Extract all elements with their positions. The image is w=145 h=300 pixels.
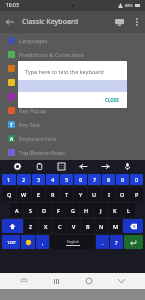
button[interactable]: W [17,187,31,201]
button[interactable]: 123? [2,235,20,249]
staticText: 0 [135,176,139,183]
button[interactable]: I [102,187,115,201]
staticText: Type here to test the keyboard [25,68,104,75]
button[interactable]: Keyboard preview [109,12,129,32]
button[interactable]: Clipboard [33,160,46,173]
staticText: Key Popup [19,107,47,114]
button[interactable]: 5 [60,174,73,185]
staticText: 123? [7,240,16,245]
staticText: F [57,207,60,214]
button[interactable]: Theme [0,75,145,89]
button[interactable]: Back [0,12,20,32]
button[interactable]: Keyboard Layout [0,89,145,103]
button[interactable]: Hide keyboard [16,273,32,289]
button[interactable]: J [94,203,107,217]
button[interactable]: 2 [17,174,31,185]
button[interactable]: . [96,235,109,249]
button[interactable]: K [108,203,121,217]
button[interactable]: Top/Bottom Rows [0,145,145,159]
staticText: P [135,191,139,198]
staticText: U [92,191,97,198]
button[interactable]: 8 [102,174,115,185]
button[interactable]: 3 [32,174,45,185]
staticText: O [120,191,125,198]
button[interactable]: Recents [48,273,64,289]
staticText: S [29,207,33,214]
button[interactable]: Z [24,219,38,233]
button[interactable]: P [130,187,143,201]
button[interactable]: Home [81,273,97,289]
button[interactable]: E [32,187,45,201]
staticText: K [113,207,117,214]
staticText: M [113,223,119,230]
button[interactable]: More options [129,14,145,30]
button[interactable]: Space [50,235,95,249]
staticText: X [44,223,48,230]
button[interactable]: Move right [99,160,112,173]
staticText: E [37,191,41,198]
staticText: 4 [51,176,55,183]
button[interactable]: Settings [11,160,24,173]
staticText: Q [7,191,12,198]
staticText: H [84,207,89,214]
button[interactable]: 9 [116,174,129,185]
staticText: Keyboard Font [19,135,57,142]
staticText: . [102,239,104,246]
staticText: R [51,191,55,198]
button[interactable]: T [60,187,73,201]
button[interactable]: 0 [130,174,143,185]
button[interactable]: Q [2,187,16,201]
button[interactable]: O [116,187,129,201]
button[interactable]: CLOSE [103,95,121,105]
button[interactable]: X [39,219,52,233]
staticText: English [67,239,79,244]
button[interactable]: Languages [0,33,145,47]
staticText: B [86,223,90,230]
button[interactable]: Emoji [21,235,35,249]
button[interactable]: N [95,219,108,233]
button[interactable]: C [53,219,66,233]
button[interactable]: H [80,203,93,217]
button[interactable]: 7 [88,174,101,185]
staticText: T [65,191,69,198]
staticText: 10:03 [6,2,19,9]
button[interactable]: Gestures [0,61,145,75]
button[interactable]: Key Popup [0,103,145,117]
button[interactable]: S [24,203,37,217]
button[interactable]: R [46,187,59,201]
button[interactable]: Enter [124,235,143,249]
button[interactable]: 6 [74,174,87,185]
staticText: N [99,223,104,230]
button[interactable]: Back [113,273,129,289]
staticText: Key Size [19,121,40,128]
button[interactable]: ? [110,235,123,249]
staticText: Y [79,191,83,198]
button[interactable]: Keypad [55,160,68,173]
button[interactable]: G [66,203,79,217]
button[interactable]: A [10,203,23,217]
button[interactable]: , [36,235,49,249]
button[interactable]: M [109,219,122,233]
button[interactable]: Move left [77,160,90,173]
button[interactable]: L [122,203,135,217]
button[interactable]: D [38,203,51,217]
button[interactable]: Predictions & Corrections [0,47,145,61]
button[interactable]: Y [74,187,87,201]
button[interactable]: U [88,187,101,201]
staticText: Top/Bottom Rows [19,149,65,156]
button[interactable]: B [81,219,94,233]
staticText: Z [29,223,33,230]
button[interactable]: Shift [2,219,23,233]
button[interactable]: F [52,203,65,217]
button[interactable]: A [0,131,145,145]
button[interactable]: 1 [2,174,16,185]
button[interactable]: V [67,219,80,233]
button[interactable]: Backspace [123,219,143,233]
button[interactable]: Voice input [121,160,134,173]
staticText: Gestures [19,65,43,72]
button[interactable]: 4 [46,174,59,185]
staticText: 1 [7,176,11,183]
staticText: T [10,122,13,128]
button[interactable]: T [0,117,145,131]
